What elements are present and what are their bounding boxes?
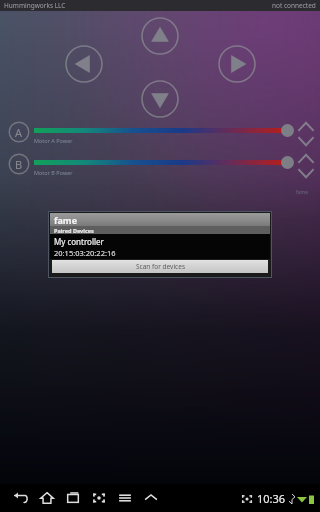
button[interactable]: Expand (138, 487, 164, 509)
button[interactable]: Motor A Power increase (296, 120, 316, 134)
button[interactable]: Motor B Power decrease (296, 166, 316, 180)
button[interactable]: Screenshot (86, 487, 112, 509)
staticText: Motor A Power (34, 137, 73, 144)
staticText: fame (54, 214, 78, 226)
button[interactable]: Motor B Power (34, 160, 282, 178)
button[interactable]: Down (140, 79, 180, 119)
button[interactable]: Motor B Power thumb (281, 156, 294, 169)
staticText: Paired Devices (54, 227, 94, 234)
staticText: B (15, 157, 23, 172)
staticText: fame (296, 189, 309, 196)
staticText: 10:36 (257, 491, 286, 506)
staticText: My controller (54, 236, 104, 247)
button[interactable]: Menu (112, 487, 138, 509)
staticText: not connected (272, 1, 316, 10)
button[interactable]: Motor A Power (34, 128, 282, 146)
button[interactable]: Motor A Power thumb (281, 124, 294, 137)
button[interactable]: Home (34, 487, 60, 509)
button[interactable]: Screenshot (241, 493, 253, 505)
staticText: 20:15:03:20:22:16 (54, 248, 116, 258)
staticText: Motor B Power (34, 169, 73, 176)
staticText: Scan for devices (136, 262, 185, 271)
button[interactable]: Motor A Power decrease (296, 134, 316, 148)
button[interactable]: My controller (50, 234, 270, 259)
button[interactable]: Scan for devices (52, 260, 268, 273)
button[interactable]: Recent apps (60, 487, 86, 509)
staticText: Hummingworks LLC (4, 1, 66, 10)
button[interactable]: B (8, 153, 30, 175)
button[interactable]: Up (140, 16, 180, 56)
staticText: A (15, 125, 23, 140)
button[interactable]: A (8, 121, 30, 143)
button[interactable]: Left (64, 44, 104, 84)
button[interactable]: Motor B Power increase (296, 152, 316, 166)
button[interactable]: Back (8, 487, 34, 509)
button[interactable]: Right (217, 44, 257, 84)
